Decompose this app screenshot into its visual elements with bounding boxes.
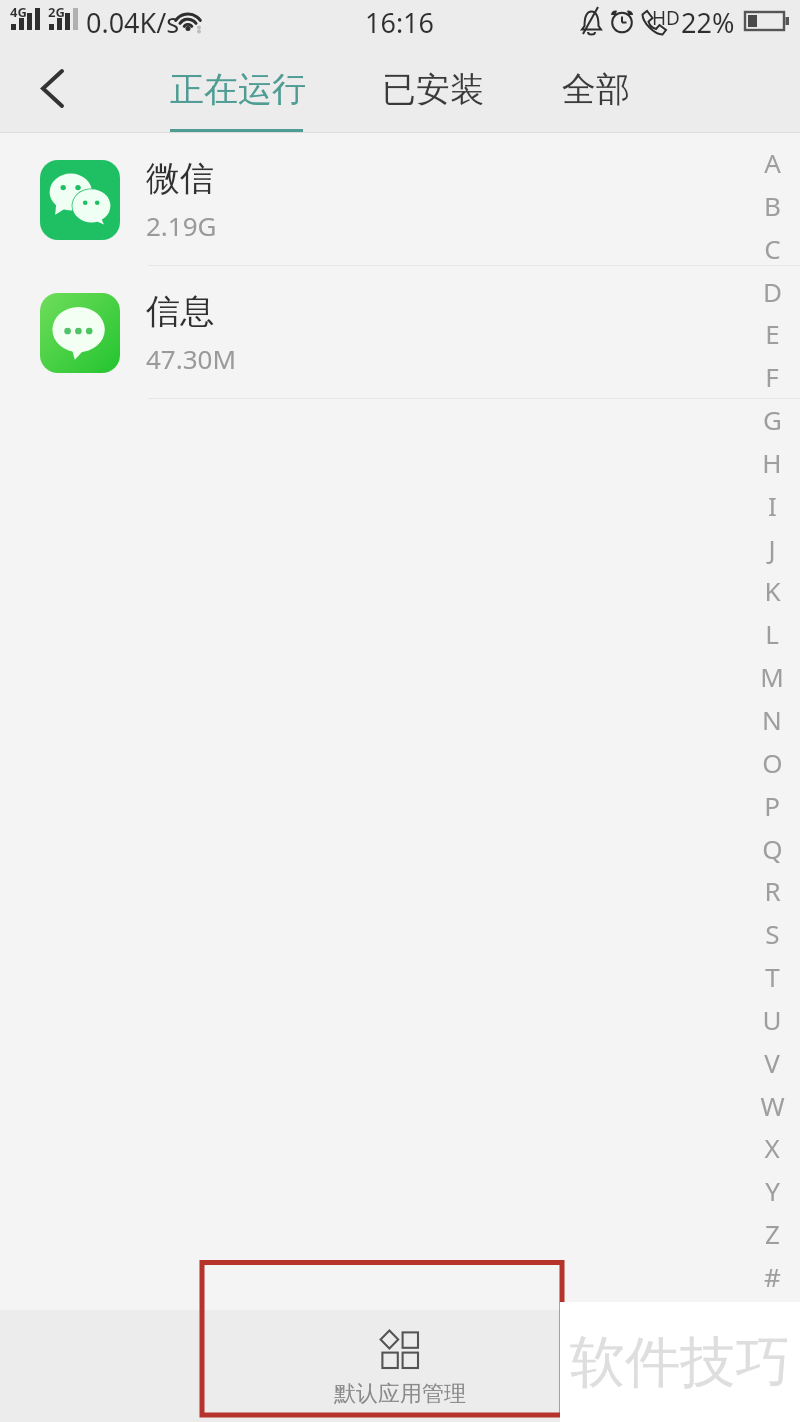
button[interactable]: O xyxy=(762,745,783,780)
button[interactable]: H xyxy=(762,445,782,480)
button[interactable]: U xyxy=(762,1002,782,1037)
staticText: 4G xyxy=(10,3,27,21)
staticText: 22% xyxy=(681,4,735,41)
button[interactable]: 全部 xyxy=(558,62,634,117)
staticText: 47.30M xyxy=(146,341,237,376)
staticText: C xyxy=(764,231,781,266)
button[interactable]: D xyxy=(763,274,782,309)
button[interactable]: M xyxy=(760,659,784,694)
button[interactable]: J xyxy=(768,531,776,566)
button[interactable]: Back xyxy=(0,45,100,133)
staticText: 2G xyxy=(48,3,65,21)
staticText: U xyxy=(762,1002,782,1037)
staticText: O xyxy=(762,745,783,780)
staticText: HD xyxy=(652,5,680,31)
staticText: M xyxy=(760,659,784,694)
button[interactable]: B xyxy=(764,188,781,223)
staticText: 2.19G xyxy=(146,208,217,243)
staticText: P xyxy=(764,788,780,823)
staticText: Q xyxy=(762,831,783,866)
staticText: 信息 xyxy=(146,290,214,333)
staticText: E xyxy=(765,316,780,351)
staticText: J xyxy=(768,531,776,566)
staticText: H xyxy=(762,445,782,480)
button[interactable]: K xyxy=(764,573,781,608)
button[interactable]: I xyxy=(768,488,777,523)
button[interactable]: N xyxy=(762,702,782,737)
button[interactable]: T xyxy=(765,959,780,994)
staticText: L xyxy=(765,616,779,651)
button[interactable]: V xyxy=(764,1045,780,1080)
staticText: A xyxy=(764,145,781,180)
button[interactable]: Y xyxy=(765,1173,780,1208)
button[interactable]: Q xyxy=(762,831,783,866)
staticText: D xyxy=(763,274,782,309)
button[interactable]: Z xyxy=(765,1216,780,1251)
staticText: I xyxy=(768,488,777,523)
staticText: 微信 xyxy=(146,157,214,200)
staticText: R xyxy=(764,873,781,908)
staticText: 软件技巧 xyxy=(570,1328,790,1397)
staticText: S xyxy=(765,916,780,951)
staticText: 已安装 xyxy=(382,68,484,111)
button[interactable]: G xyxy=(763,402,782,437)
button[interactable]: F xyxy=(765,359,779,394)
button[interactable]: X xyxy=(764,1130,780,1165)
staticText: Z xyxy=(765,1216,780,1251)
staticText: F xyxy=(765,359,779,394)
staticText: K xyxy=(764,573,781,608)
staticText: 16:16 xyxy=(365,4,435,41)
button[interactable]: 微信 xyxy=(0,133,800,266)
staticText: 正在运行 xyxy=(170,68,306,111)
button[interactable]: P xyxy=(764,788,780,823)
staticText: B xyxy=(764,188,781,223)
staticText: 全部 xyxy=(562,68,630,111)
staticText: T xyxy=(765,959,780,994)
button[interactable]: A xyxy=(764,145,781,180)
staticText: N xyxy=(762,702,782,737)
button[interactable]: R xyxy=(764,873,781,908)
staticText: W xyxy=(760,1088,785,1123)
button[interactable]: 信息 xyxy=(0,266,800,399)
button[interactable]: # xyxy=(764,1259,781,1294)
button[interactable]: 正在运行 xyxy=(166,62,310,117)
staticText: G xyxy=(763,402,782,437)
staticText: # xyxy=(764,1259,781,1294)
button[interactable]: W xyxy=(760,1088,785,1123)
button[interactable]: S xyxy=(765,916,780,951)
staticText: X xyxy=(764,1130,780,1165)
button[interactable]: E xyxy=(765,316,780,351)
button[interactable]: L xyxy=(765,616,779,651)
staticText: V xyxy=(764,1045,780,1080)
button[interactable]: 已安装 xyxy=(378,62,488,117)
staticText: Y xyxy=(765,1173,780,1208)
staticText: 0.04K/s xyxy=(86,4,180,41)
staticText: 默认应用管理 xyxy=(334,1380,466,1408)
button[interactable]: 默认应用管理 xyxy=(0,1310,800,1422)
button[interactable]: C xyxy=(764,231,781,266)
